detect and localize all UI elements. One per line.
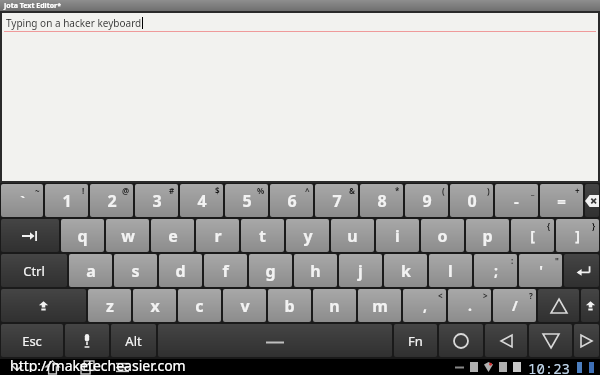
button[interactable]: Esc bbox=[1, 324, 63, 357]
button[interactable]: / bbox=[493, 289, 536, 322]
button[interactable]: ; bbox=[474, 254, 517, 287]
button[interactable]: , bbox=[403, 289, 446, 322]
staticText: http://maketecheasier.com bbox=[10, 356, 186, 372]
staticText: x bbox=[150, 295, 160, 317]
button[interactable]: Menu bbox=[116, 361, 129, 374]
button[interactable]: Hide keyboard bbox=[10, 360, 24, 374]
staticText: 8 bbox=[377, 190, 387, 212]
button[interactable]: Left bbox=[485, 324, 527, 357]
staticText: < bbox=[438, 290, 443, 301]
button[interactable]: Down bbox=[529, 324, 572, 357]
button[interactable]: ' bbox=[519, 254, 562, 287]
staticText: g bbox=[265, 260, 276, 282]
button[interactable]: Voice input bbox=[65, 324, 109, 357]
button[interactable]: 8 bbox=[360, 184, 403, 217]
staticText: b bbox=[284, 295, 295, 317]
button[interactable]: j bbox=[339, 254, 382, 287]
button[interactable]: Ctrl bbox=[1, 254, 67, 287]
button[interactable]: = bbox=[540, 184, 583, 217]
button[interactable]: - bbox=[495, 184, 538, 217]
button[interactable]: Up bbox=[538, 289, 579, 322]
button[interactable]: Shift bbox=[581, 289, 599, 322]
button[interactable]: ` bbox=[1, 184, 43, 217]
staticText: q bbox=[77, 225, 88, 247]
staticText: e bbox=[168, 225, 178, 247]
staticText: Typing on a hacker keyboard bbox=[6, 16, 142, 30]
staticText: ; bbox=[494, 261, 498, 280]
button[interactable]: n bbox=[313, 289, 356, 322]
staticText: z bbox=[106, 295, 114, 317]
staticText: @ bbox=[122, 185, 130, 196]
button[interactable]: Backspace bbox=[585, 184, 599, 217]
staticText: c bbox=[195, 295, 204, 317]
button[interactable]: 2 bbox=[90, 184, 133, 217]
button[interactable]: p bbox=[466, 219, 509, 252]
staticText: o bbox=[437, 225, 448, 247]
staticText: ) bbox=[487, 185, 490, 196]
button[interactable]: 7 bbox=[315, 184, 358, 217]
button[interactable]: . bbox=[448, 289, 491, 322]
button[interactable]: t bbox=[241, 219, 284, 252]
button[interactable]: Home bbox=[46, 361, 59, 374]
button[interactable]: Space bbox=[158, 324, 392, 357]
button[interactable]: ] bbox=[556, 219, 599, 252]
button[interactable]: x bbox=[133, 289, 176, 322]
staticText: { bbox=[547, 220, 551, 231]
button[interactable]: c bbox=[178, 289, 221, 322]
button[interactable]: s bbox=[114, 254, 157, 287]
staticText: 1 bbox=[62, 190, 72, 212]
button[interactable]: [ bbox=[511, 219, 554, 252]
button[interactable]: Tab bbox=[1, 219, 59, 252]
button[interactable]: h bbox=[294, 254, 337, 287]
button[interactable]: 1 bbox=[45, 184, 88, 217]
staticText: ? bbox=[529, 290, 533, 301]
button[interactable]: 0 bbox=[450, 184, 493, 217]
button[interactable]: q bbox=[61, 219, 104, 252]
staticText: n bbox=[329, 295, 340, 317]
button[interactable]: r bbox=[196, 219, 239, 252]
button[interactable]: Recent apps bbox=[81, 361, 94, 374]
staticText: m bbox=[372, 295, 388, 317]
button[interactable]: y bbox=[286, 219, 329, 252]
button[interactable]: v bbox=[223, 289, 266, 322]
button[interactable]: Home circle bbox=[439, 324, 483, 357]
button[interactable]: b bbox=[268, 289, 311, 322]
button[interactable]: o bbox=[421, 219, 464, 252]
staticText: y bbox=[303, 225, 313, 247]
button[interactable]: Right bbox=[574, 324, 599, 357]
staticText: l bbox=[448, 260, 453, 282]
button[interactable]: 3 bbox=[135, 184, 178, 217]
button[interactable]: Alt bbox=[111, 324, 156, 357]
staticText: f bbox=[222, 260, 229, 282]
staticText: i bbox=[395, 225, 400, 247]
button[interactable]: Fn bbox=[394, 324, 437, 357]
button[interactable]: 4 bbox=[180, 184, 223, 217]
staticText: ~ bbox=[35, 185, 40, 196]
staticText: 5 bbox=[242, 190, 252, 212]
button[interactable]: 9 bbox=[405, 184, 448, 217]
button[interactable]: l bbox=[429, 254, 472, 287]
button[interactable]: z bbox=[88, 289, 131, 322]
staticText: d bbox=[175, 260, 186, 282]
staticText: v bbox=[240, 295, 250, 317]
button[interactable]: m bbox=[358, 289, 401, 322]
button[interactable]: i bbox=[376, 219, 419, 252]
staticText: 7 bbox=[332, 190, 342, 212]
staticText: k bbox=[401, 260, 411, 282]
button[interactable]: a bbox=[69, 254, 112, 287]
button[interactable]: f bbox=[204, 254, 247, 287]
button[interactable]: w bbox=[106, 219, 149, 252]
staticText: j bbox=[358, 260, 363, 282]
button[interactable]: d bbox=[159, 254, 202, 287]
button[interactable]: 6 bbox=[270, 184, 313, 217]
staticText: ! bbox=[82, 185, 85, 196]
staticText: Ctrl bbox=[23, 262, 45, 280]
staticText: = bbox=[557, 191, 566, 211]
button[interactable]: u bbox=[331, 219, 374, 252]
button[interactable]: 5 bbox=[225, 184, 268, 217]
button[interactable]: Shift bbox=[1, 289, 86, 322]
button[interactable]: k bbox=[384, 254, 427, 287]
button[interactable]: Enter bbox=[564, 254, 599, 287]
button[interactable]: e bbox=[151, 219, 194, 252]
button[interactable]: g bbox=[249, 254, 292, 287]
